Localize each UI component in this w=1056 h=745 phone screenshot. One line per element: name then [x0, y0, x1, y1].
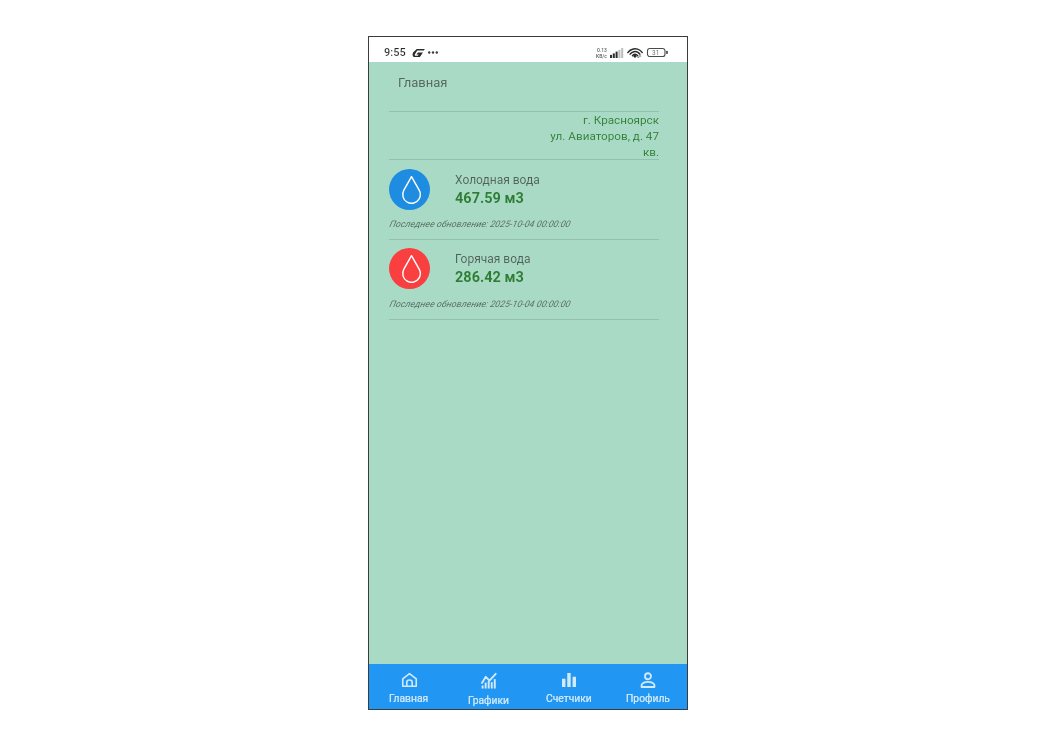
staticText: Счетчики — [546, 692, 592, 704]
button[interactable]: Главная — [369, 664, 449, 709]
staticText: Холодная вода — [455, 173, 540, 187]
button[interactable]: Холодная вода — [389, 169, 659, 210]
staticText: Главная — [398, 75, 448, 90]
staticText: 31 — [652, 49, 660, 57]
button[interactable]: Счетчики — [529, 664, 609, 709]
staticText: Горячая вода — [455, 252, 531, 266]
staticText: г. Красноярск ул. Авиаторов, д. 47 кв. — [389, 113, 659, 159]
button[interactable]: Горячая вода — [389, 248, 659, 289]
staticText: 9:55 — [384, 46, 406, 59]
staticText: Последнее обновление: 2025-10-04 00:00:0… — [389, 299, 570, 310]
button[interactable]: Профиль — [609, 664, 687, 709]
staticText: Профиль — [626, 692, 670, 704]
button[interactable]: Графики — [449, 664, 529, 709]
staticText: Последнее обновление: 2025-10-04 00:00:0… — [389, 219, 570, 230]
staticText: 286.42 м3 — [455, 269, 524, 286]
staticText: Главная — [389, 692, 429, 704]
staticText: 467.59 м3 — [455, 190, 524, 207]
staticText: 0.13 — [597, 47, 607, 53]
staticText: KB/c — [596, 53, 607, 59]
staticText: Графики — [468, 694, 510, 706]
